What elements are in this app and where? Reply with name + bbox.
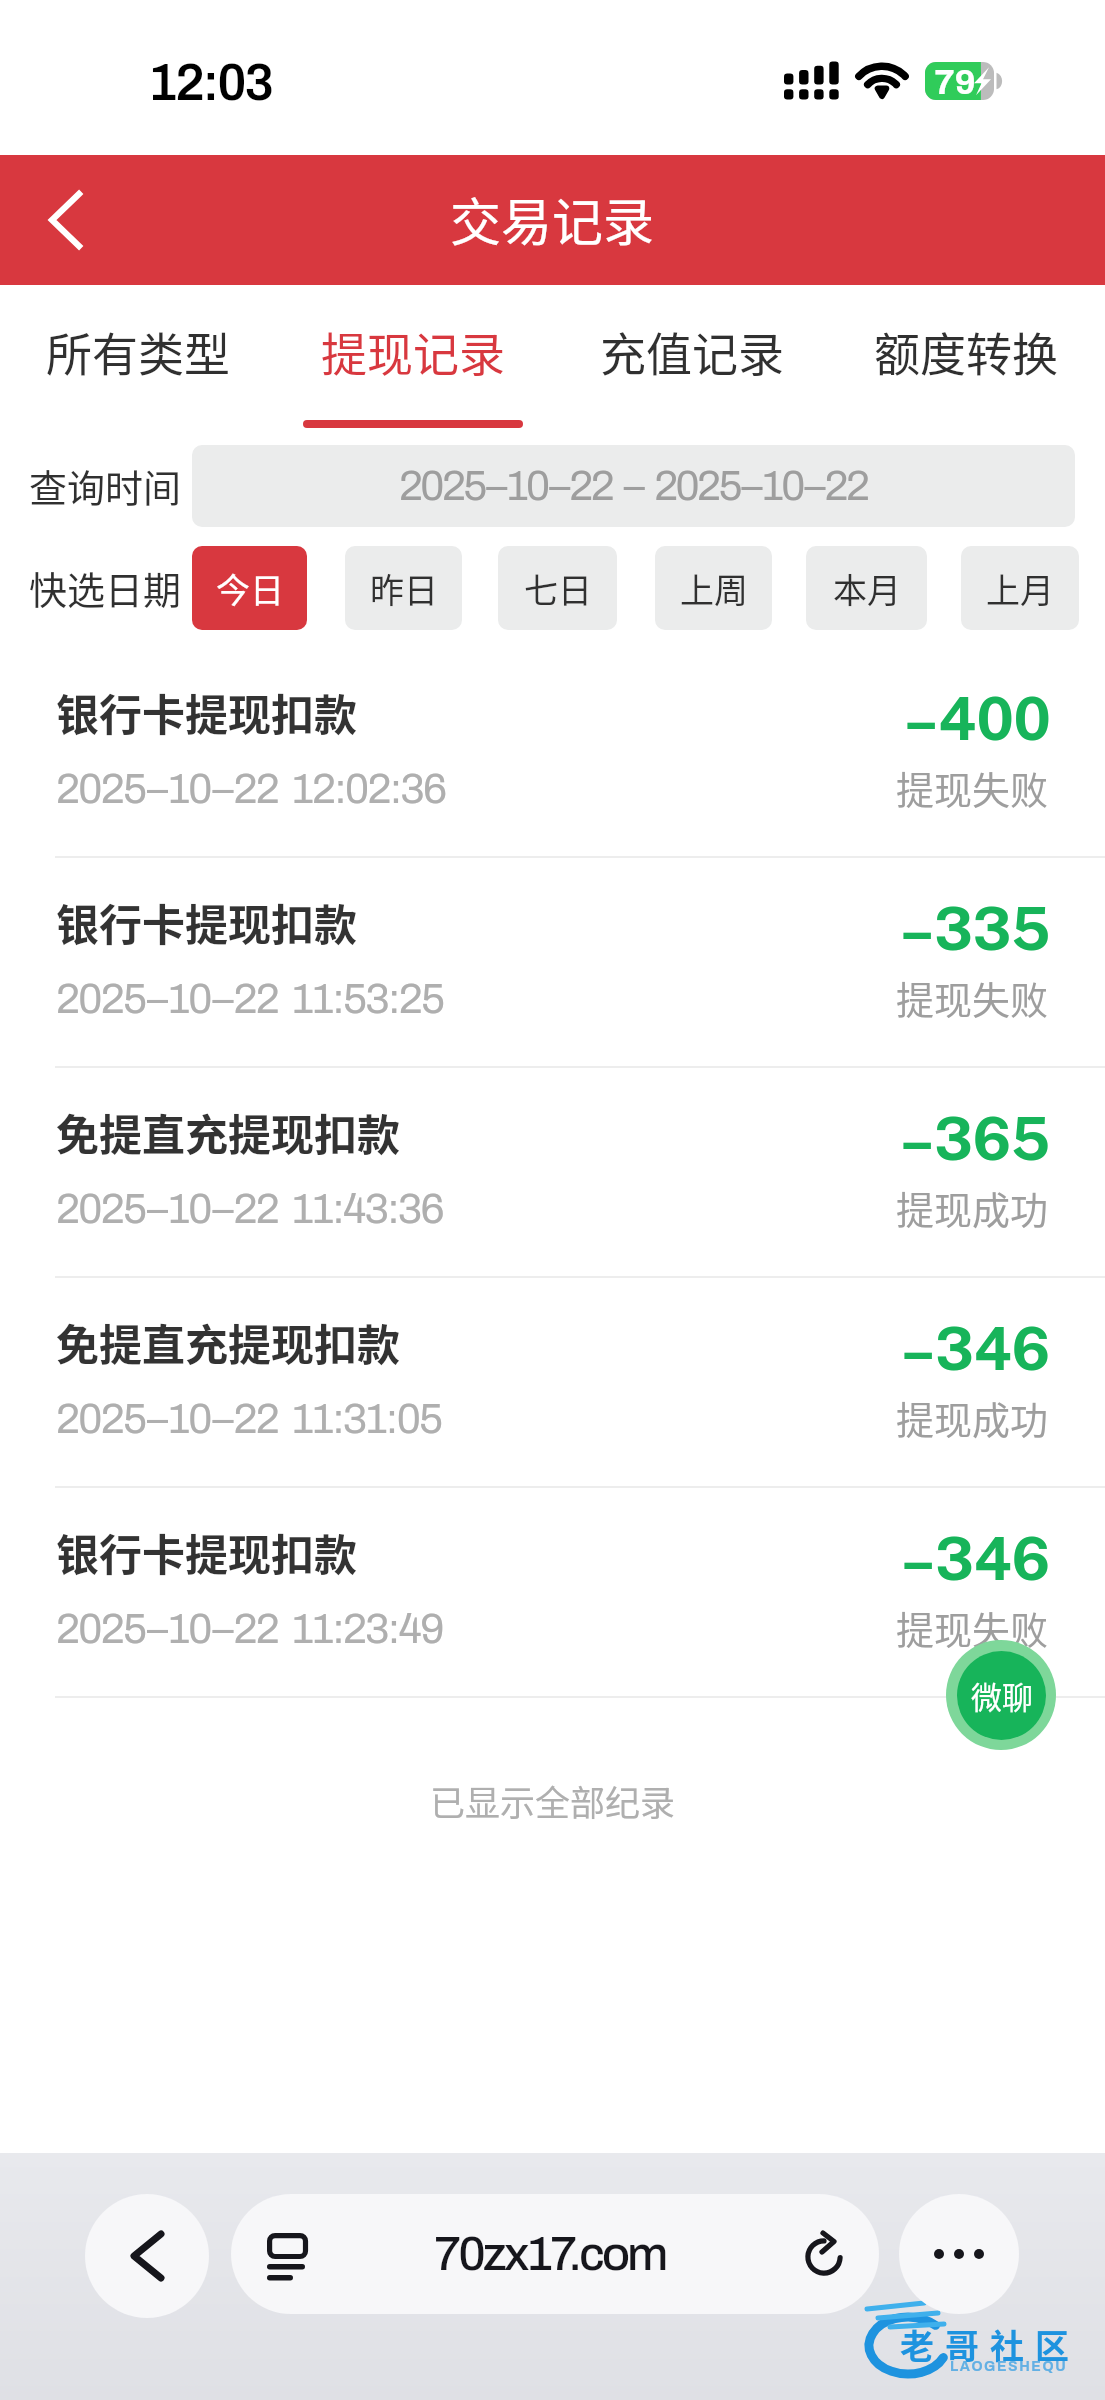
staticText: 老哥社区 bbox=[900, 2320, 1080, 2369]
staticText: 今日 bbox=[216, 564, 284, 613]
staticText: 提现失败 bbox=[896, 1600, 1049, 1655]
staticText: 已显示全部纪录 bbox=[430, 1775, 676, 1826]
button[interactable]: 免提直充提现扣款 bbox=[0, 1068, 1105, 1278]
staticText: 微聊 bbox=[971, 1673, 1033, 1718]
button[interactable]: 更多 bbox=[899, 2194, 1019, 2314]
staticText: 提现记录 bbox=[321, 318, 505, 385]
staticText: 银行卡提现扣款 bbox=[56, 681, 357, 743]
staticText: 提现失败 bbox=[896, 760, 1049, 815]
button[interactable]: 充值记录 bbox=[557, 285, 827, 440]
staticText: 2025–10–22 12:02:36 bbox=[56, 766, 446, 812]
button[interactable]: 银行卡提现扣款 bbox=[0, 648, 1105, 858]
button[interactable]: 昨日 bbox=[345, 546, 462, 630]
staticText: 本月 bbox=[833, 564, 901, 613]
button[interactable]: 七日 bbox=[498, 546, 617, 630]
staticText: –346 bbox=[901, 1315, 1051, 1383]
button[interactable]: 上周 bbox=[655, 546, 772, 630]
staticText: 12:03 bbox=[148, 55, 272, 110]
button[interactable]: 所有类型 bbox=[3, 285, 273, 440]
staticText: 2025–10–22 11:53:25 bbox=[56, 976, 444, 1022]
staticText: LAOGESHEQU bbox=[950, 2359, 1068, 2374]
button[interactable]: 上月 bbox=[961, 546, 1079, 630]
button[interactable]: 本月 bbox=[806, 546, 927, 630]
button[interactable]: 额度转换 bbox=[831, 285, 1101, 440]
staticText: 免提直充提现扣款 bbox=[56, 1311, 400, 1373]
button[interactable]: 刷新 bbox=[792, 2222, 856, 2286]
staticText: –400 bbox=[904, 685, 1051, 753]
staticText: 2025–10–22 11:23:49 bbox=[56, 1606, 443, 1652]
button[interactable]: 返回 bbox=[15, 160, 115, 280]
staticText: 额度转换 bbox=[874, 318, 1058, 385]
button[interactable]: 今日 bbox=[192, 546, 307, 630]
button[interactable]: 免提直充提现扣款 bbox=[0, 1278, 1105, 1488]
button[interactable]: 70zx17.com bbox=[231, 2194, 879, 2314]
button[interactable]: 后退 bbox=[85, 2194, 209, 2318]
staticText: 上周 bbox=[680, 564, 748, 613]
button[interactable]: 银行卡提现扣款 bbox=[0, 858, 1105, 1068]
staticText: 充值记录 bbox=[600, 318, 784, 385]
staticText: 快选日期 bbox=[29, 560, 182, 615]
staticText: 银行卡提现扣款 bbox=[56, 891, 357, 953]
button[interactable]: 微聊 bbox=[946, 1640, 1056, 1750]
button[interactable]: 银行卡提现扣款 bbox=[0, 1488, 1105, 1698]
staticText: 交易记录 bbox=[450, 182, 655, 256]
staticText: –335 bbox=[900, 895, 1051, 963]
button[interactable]: 2025–10–22 – 2025–10–22 bbox=[192, 445, 1075, 527]
staticText: 2025–10–22 – 2025–10–22 bbox=[399, 463, 868, 509]
staticText: –365 bbox=[900, 1105, 1051, 1173]
staticText: 79 bbox=[934, 63, 976, 101]
staticText: 提现失败 bbox=[896, 970, 1049, 1025]
staticText: 昨日 bbox=[370, 564, 438, 613]
staticText: 七日 bbox=[524, 564, 592, 613]
button[interactable]: 提现记录 bbox=[278, 285, 548, 440]
staticText: 2025–10–22 11:31:05 bbox=[56, 1396, 442, 1442]
staticText: 银行卡提现扣款 bbox=[56, 1521, 357, 1583]
staticText: 所有类型 bbox=[46, 318, 230, 385]
staticText: 2025–10–22 11:43:36 bbox=[56, 1186, 443, 1232]
staticText: 提现成功 bbox=[896, 1390, 1049, 1445]
staticText: 免提直充提现扣款 bbox=[56, 1101, 400, 1163]
staticText: –346 bbox=[901, 1525, 1051, 1593]
staticText: 70zx17.com bbox=[434, 2228, 666, 2280]
staticText: 查询时间 bbox=[29, 458, 182, 513]
staticText: 上月 bbox=[986, 564, 1054, 613]
staticText: 提现成功 bbox=[896, 1180, 1049, 1235]
